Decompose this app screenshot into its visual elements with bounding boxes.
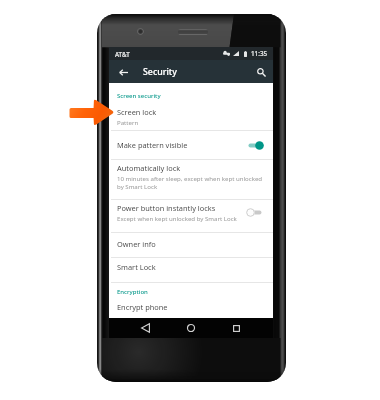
staticText: Screen lock (117, 107, 157, 117)
button[interactable]: Search (251, 62, 271, 82)
staticText: Pattern (117, 118, 139, 126)
button[interactable]: Back (113, 62, 133, 82)
button[interactable]: Switch on (248, 141, 264, 150)
staticText: Encryption (117, 288, 148, 296)
staticText: 11:35 (251, 49, 268, 58)
button[interactable]: Smart Lock (109, 257, 273, 277)
staticText: Owner info (117, 239, 156, 249)
button[interactable]: Encrypt phone (109, 302, 273, 312)
staticText: Make pattern visible (117, 140, 188, 150)
button[interactable]: Make pattern visible (109, 131, 273, 159)
button[interactable]: Screen lock (109, 107, 273, 126)
staticText: 10 minutes after sleep, except when kept… (117, 174, 266, 190)
button[interactable]: Home (177, 318, 205, 338)
button[interactable]: Recent apps (222, 318, 250, 338)
button[interactable]: Switch off (246, 208, 262, 217)
staticText: Except when kept unlocked by Smart Lock (117, 214, 237, 222)
button[interactable]: Automatically lock (109, 163, 273, 190)
staticText: AT&T (115, 50, 130, 58)
button[interactable]: Owner info (109, 232, 273, 255)
staticText: Power button instantly locks (117, 203, 216, 213)
button[interactable]: Power button instantly locks (109, 203, 273, 222)
staticText: Automatically lock (117, 163, 181, 173)
other: Callout arrow pointing to Screen lock (69, 98, 115, 127)
button[interactable]: Back (131, 318, 159, 338)
staticText: Screen security (117, 92, 161, 100)
staticText: Security (143, 66, 177, 78)
staticText: Smart Lock (117, 262, 156, 272)
